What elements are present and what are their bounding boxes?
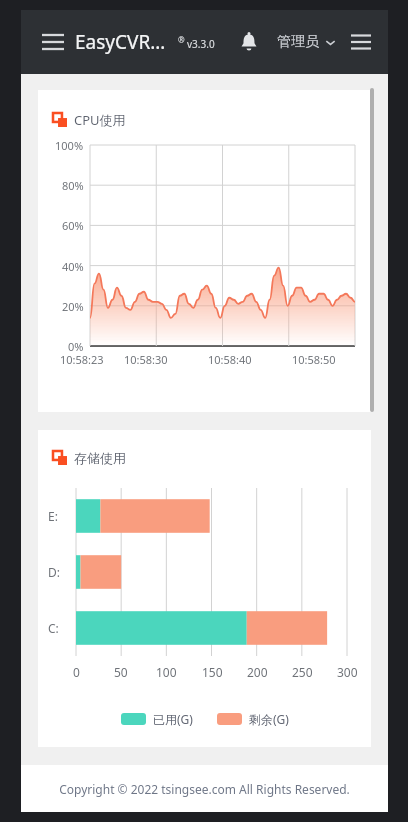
staticText: 10:58:40: [208, 352, 252, 367]
staticText: D:: [48, 564, 60, 580]
staticText: 50: [114, 664, 128, 680]
staticText: C:: [48, 620, 59, 636]
staticText: EasyCVR…: [75, 29, 166, 55]
staticText: CPU使用: [74, 111, 126, 129]
button[interactable]: 存储使用: [38, 430, 371, 747]
staticText: 管理员: [277, 33, 319, 51]
button[interactable]: 管理员: [277, 33, 336, 51]
staticText: 60%: [62, 218, 84, 233]
staticText: 300: [337, 664, 358, 680]
staticText: 100: [156, 664, 177, 680]
staticText: ®: [178, 34, 185, 45]
staticText: 10:58:50: [292, 352, 336, 367]
staticText: v3.3.0: [187, 37, 215, 51]
staticText: 0: [73, 664, 80, 680]
staticText: 40%: [62, 259, 84, 274]
button[interactable]: Notifications: [233, 26, 265, 58]
staticText: Copyright © 2022 tsingsee.com All Rights…: [59, 781, 350, 797]
staticText: 250: [292, 664, 313, 680]
staticText: 已用(G): [153, 711, 193, 727]
staticText: 100%: [55, 138, 84, 153]
staticText: E:: [48, 508, 58, 524]
staticText: 10:58:30: [124, 352, 168, 367]
staticText: 20%: [62, 299, 84, 314]
button[interactable]: 剩余(G): [217, 711, 289, 727]
staticText: 存储使用: [74, 450, 126, 466]
button[interactable]: More options: [346, 27, 376, 57]
staticText: 0%: [68, 339, 84, 354]
staticText: 200: [247, 664, 268, 680]
button[interactable]: CPU使用: [38, 90, 371, 412]
staticText: 150: [202, 664, 223, 680]
button[interactable]: 已用(G): [121, 711, 193, 727]
button[interactable]: Menu: [37, 26, 69, 58]
staticText: 80%: [62, 178, 84, 193]
staticText: 剩余(G): [249, 711, 289, 727]
staticText: 10:58:23: [60, 352, 104, 367]
